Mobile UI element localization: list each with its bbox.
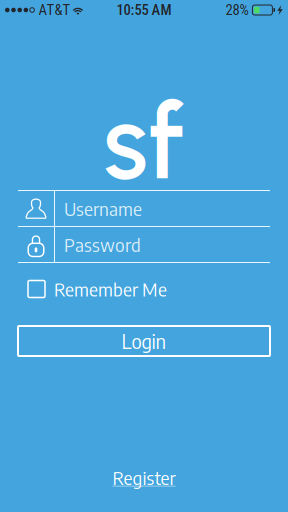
staticText: sf <box>103 80 185 205</box>
staticText: Username <box>64 197 142 220</box>
button[interactable]: Password <box>18 227 270 262</box>
button[interactable]: Login <box>18 326 270 356</box>
staticText: Login <box>121 328 166 353</box>
button[interactable]: Remember Me <box>18 272 270 306</box>
staticText: Register <box>112 466 175 489</box>
staticText: 10:55 AM <box>116 1 171 19</box>
button[interactable]: Username <box>18 191 270 226</box>
staticText: 28% <box>225 1 248 19</box>
staticText: Password <box>64 233 141 256</box>
button[interactable]: Register <box>112 466 175 489</box>
staticText: Remember Me <box>54 277 167 301</box>
staticText: AT&T <box>38 1 70 19</box>
